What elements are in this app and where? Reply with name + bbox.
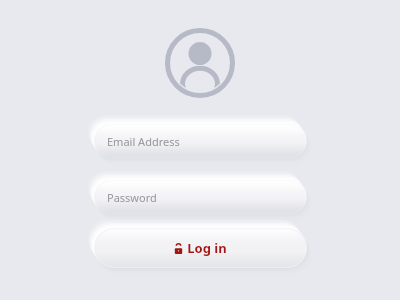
- button[interactable]: Password: [94, 180, 307, 214]
- button[interactable]: Email Address: [94, 124, 307, 158]
- staticText: Email Address: [107, 134, 180, 149]
- other: Profile avatar: [165, 28, 235, 98]
- staticText: Password: [107, 190, 157, 205]
- staticText: Log in: [187, 239, 227, 257]
- button[interactable]: Log in: [94, 228, 307, 268]
